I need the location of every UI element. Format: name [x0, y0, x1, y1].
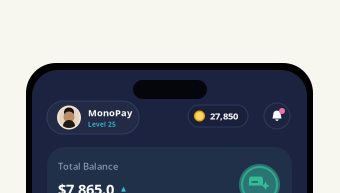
- staticText: Total Balance: [58, 160, 118, 172]
- staticText: Level 25: [88, 120, 116, 129]
- button[interactable]: Send money: [239, 164, 280, 193]
- staticText: MonoPay: [88, 106, 132, 119]
- button[interactable]: 27,850: [188, 105, 248, 127]
- staticText: $7,865.0: [58, 179, 114, 193]
- button[interactable]: MonoPay: [47, 101, 139, 134]
- button[interactable]: Notifications: [264, 103, 290, 129]
- staticText: 27,850: [210, 110, 238, 122]
